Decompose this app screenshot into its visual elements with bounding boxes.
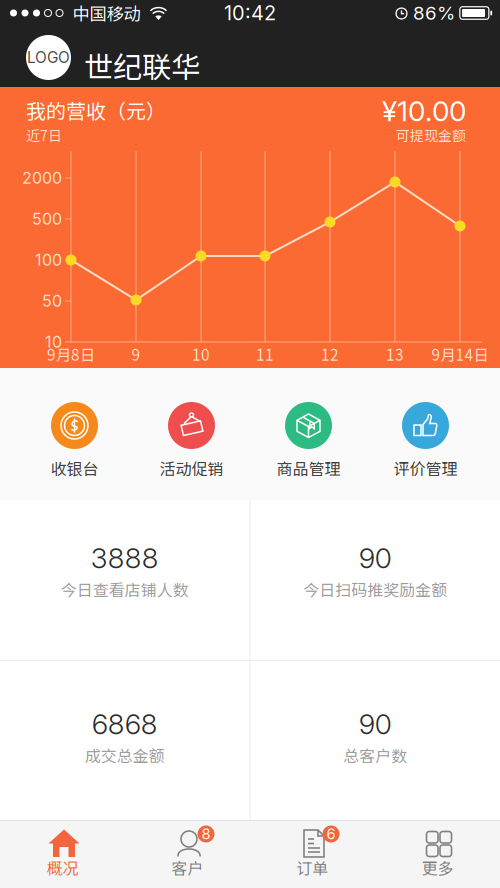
staticText: 10 xyxy=(45,332,62,352)
staticText: LOGO xyxy=(27,48,70,67)
staticText: ¥10.00 xyxy=(382,94,466,128)
staticText: 商品管理 xyxy=(276,456,340,480)
button[interactable]: 商品管理 xyxy=(250,402,367,476)
staticText: 10:42 xyxy=(224,1,276,25)
staticText: 86% xyxy=(413,2,455,24)
staticText: 9月8日 xyxy=(47,343,95,365)
staticText: 8 xyxy=(201,825,210,843)
button[interactable]: 8 xyxy=(125,828,250,876)
staticText: 订单 xyxy=(296,856,328,879)
staticText: 11 xyxy=(256,343,274,365)
staticText: 6868 xyxy=(92,707,158,741)
staticText: 评价管理 xyxy=(393,456,457,480)
staticText: 概况 xyxy=(46,856,78,879)
staticText: 总客户数 xyxy=(343,743,407,767)
staticText: 100 xyxy=(35,250,62,270)
staticText: 90 xyxy=(359,707,392,741)
staticText: 2000 xyxy=(22,168,62,188)
staticText: 今日扫码推奖励金额 xyxy=(303,577,447,601)
button[interactable]: 评价管理 xyxy=(367,402,484,476)
button[interactable]: 更多 xyxy=(375,828,500,876)
staticText: 10 xyxy=(192,343,210,365)
staticText: 6 xyxy=(326,825,335,843)
staticText: 500 xyxy=(32,209,62,229)
staticText: 客户 xyxy=(171,856,203,879)
staticText: 中国移动 xyxy=(72,0,140,26)
staticText: 13 xyxy=(386,343,404,365)
staticText: 活动促销 xyxy=(159,456,223,480)
staticText: 12 xyxy=(321,343,339,365)
staticText: 9 xyxy=(131,343,140,365)
staticText: 今日查看店铺人数 xyxy=(61,577,189,601)
staticText: 成交总金额 xyxy=(85,743,165,767)
staticText: 50 xyxy=(42,291,62,311)
button[interactable]: 收银台 xyxy=(16,402,133,476)
staticText: 我的营收（元） xyxy=(26,95,166,124)
button[interactable]: 活动促销 xyxy=(133,402,250,476)
staticText: 可提现金额 xyxy=(396,125,466,145)
staticText: 9月14日 xyxy=(431,343,488,365)
staticText: 世纪联华 xyxy=(84,44,200,86)
staticText: 3888 xyxy=(91,541,159,575)
staticText: 90 xyxy=(359,541,392,575)
button[interactable]: 概况 xyxy=(0,828,125,876)
staticText: 近7日 xyxy=(26,125,62,145)
button[interactable]: 6 xyxy=(250,828,375,876)
staticText: 更多 xyxy=(421,856,453,879)
staticText: 收银台 xyxy=(50,456,98,480)
